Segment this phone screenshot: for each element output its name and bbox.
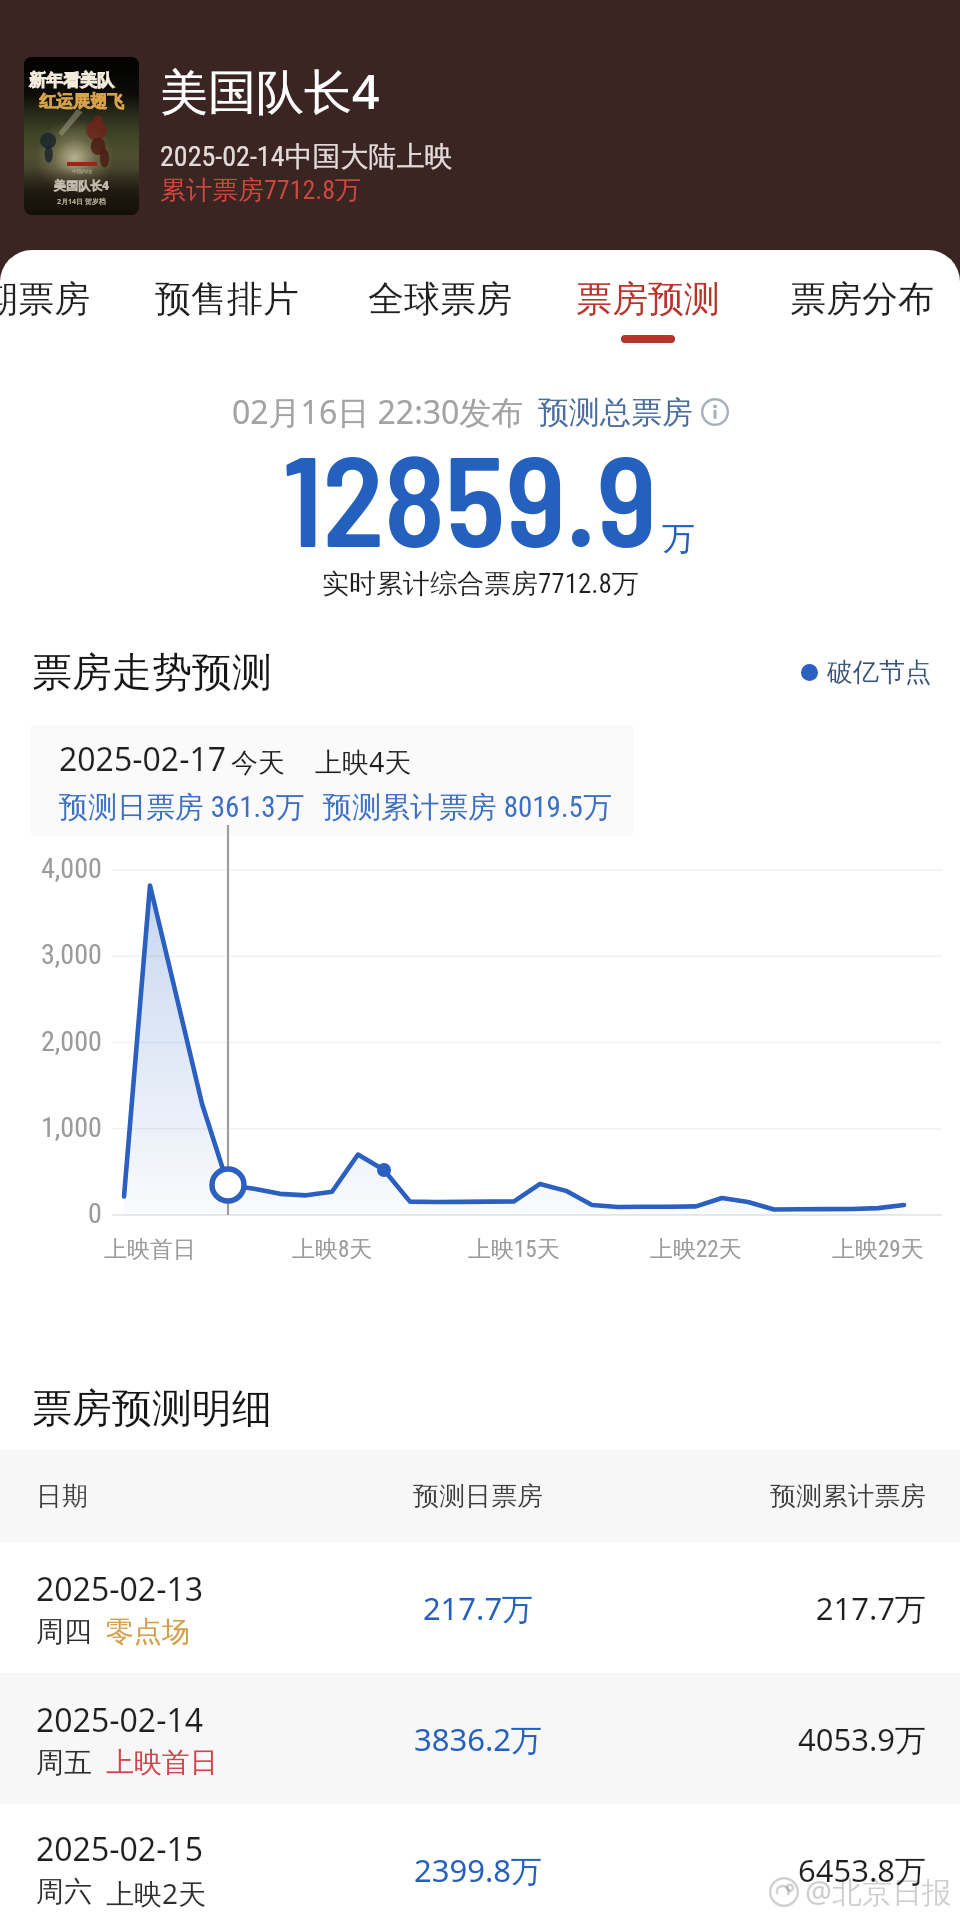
staticText: 票房预测 [576,276,720,321]
staticText: 全球票房 [368,276,512,321]
staticText: 实时累计综合票房7712.8万 [322,567,639,601]
staticText: 上映8天 [292,1235,373,1264]
staticText: 上映首日 [106,1745,218,1780]
staticText: 12859.9 [283,421,657,572]
staticText: 上映首日 [104,1235,196,1264]
staticText: 上映22天 [650,1235,742,1264]
button[interactable]: 2025-02-13 [0,1542,960,1673]
staticText: 万 [662,518,695,560]
staticText: 今天 [231,746,285,780]
staticText: 红运展翅飞 [39,91,124,112]
button[interactable]: 票房分布 [786,250,938,358]
staticText: 票房预测明细 [32,1383,272,1433]
staticText: 中国内地 [72,168,92,174]
staticText: 破亿节点 [827,656,931,689]
staticText: 周五 [36,1745,92,1780]
staticText: @北京日报 [805,1871,952,1912]
staticText: 预测日票房 [376,1480,580,1513]
staticText: 日期 [36,1480,376,1513]
staticText: 6453.8万 [580,1849,926,1891]
staticText: 4,000 [41,852,102,885]
staticText: 217.7万 [580,1587,926,1629]
staticText: 预售排片 [155,276,299,321]
staticText: 零点场 [106,1614,190,1649]
staticText: 217.7万 [376,1587,580,1629]
staticText: 3,000 [41,938,102,971]
staticText: 美国队长4 [160,58,380,124]
button[interactable]: 破亿节点 [801,656,931,689]
staticText: 2025-02-14 [36,1698,204,1742]
staticText: 2月14日 贺岁档 [57,197,106,207]
staticText: 4053.9万 [580,1718,926,1760]
staticText: 预测累计票房 8019.5万 [323,789,612,826]
button[interactable]: 2025-02-14 [0,1673,960,1804]
staticText: 美国队长4 [54,177,110,193]
staticText: 周四 [36,1614,92,1649]
staticText: 票房分布 [790,276,934,321]
staticText: 2,000 [41,1025,102,1058]
staticText: 3836.2万 [376,1718,580,1760]
button[interactable]: 电影海报 [24,57,139,215]
staticText: 期票房 [0,276,90,321]
staticText: 0 [88,1197,102,1230]
staticText: 2025-02-14中国大陆上映 [160,139,453,174]
staticText: 2399.8万 [376,1849,580,1891]
staticText: 新年看美队 [29,70,114,91]
staticText: 累计票房7712.8万 [160,174,362,207]
button[interactable]: 预售排片 [151,250,303,358]
staticText: 票房走势预测 [32,647,272,697]
staticText: 02月16日 22:30发布 [232,390,524,434]
button[interactable]: 全球票房 [364,250,516,358]
staticText: 预测累计票房 [580,1480,926,1513]
staticText: 上映2天 [106,1874,207,1912]
staticText: 周六 [36,1874,92,1909]
button[interactable]: 期票房 [0,250,93,358]
staticText: 上映4天 [315,743,412,780]
staticText: 上映15天 [468,1235,560,1264]
button[interactable]: 票房预测 [572,250,724,358]
staticText: 预测总票房 [538,393,693,432]
staticText: 2025-02-17 [59,737,227,781]
staticText: 2025-02-13 [36,1567,204,1611]
staticText: 预测日票房 361.3万 [59,789,305,826]
button[interactable]: 预测说明 [701,398,729,426]
staticText: 上映29天 [832,1235,924,1264]
button[interactable]: 2025-02-15 [0,1804,960,1923]
staticText: 2025-02-15 [36,1827,204,1871]
staticText: 1,000 [41,1111,102,1144]
